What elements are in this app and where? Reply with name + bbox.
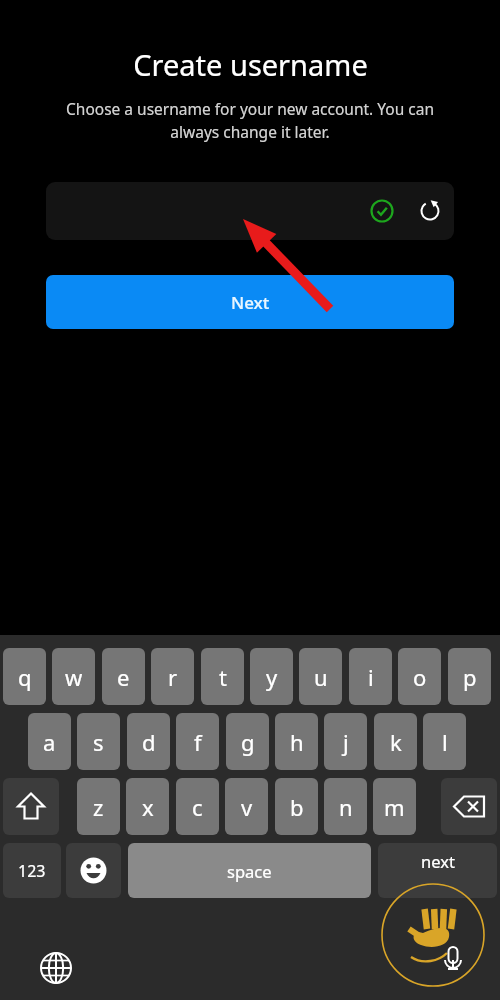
button[interactable]: p — [448, 648, 491, 705]
staticText: j — [343, 727, 349, 757]
staticText: d — [142, 727, 156, 757]
button[interactable]: Username available — [46, 182, 454, 240]
staticText: l — [442, 727, 448, 757]
button[interactable]: q — [3, 648, 46, 705]
staticText: c — [192, 792, 203, 822]
staticText: f — [194, 727, 202, 757]
staticText: space — [227, 860, 272, 882]
staticText: next — [421, 850, 455, 872]
staticText: r — [168, 662, 178, 692]
button[interactable]: r — [151, 648, 194, 705]
button[interactable]: f — [176, 713, 219, 770]
button[interactable]: Next — [46, 275, 454, 329]
button[interactable]: d — [127, 713, 170, 770]
staticText: 123 — [18, 860, 46, 882]
button[interactable]: g — [226, 713, 269, 770]
button[interactable]: b — [275, 778, 318, 835]
staticText: Create username — [133, 45, 368, 84]
button[interactable]: k — [374, 713, 417, 770]
button[interactable]: c — [176, 778, 219, 835]
staticText: Choose a username for your new account. … — [42, 98, 458, 143]
staticText: z — [93, 792, 104, 822]
button[interactable]: Refresh suggestion — [418, 199, 442, 223]
staticText: p — [463, 662, 477, 692]
button[interactable]: u — [299, 648, 342, 705]
button[interactable]: y — [250, 648, 293, 705]
staticText: a — [43, 727, 56, 757]
button[interactable]: n — [324, 778, 367, 835]
staticText: Next — [231, 291, 270, 314]
staticText: g — [241, 727, 255, 757]
button[interactable]: i — [349, 648, 392, 705]
button[interactable]: o — [398, 648, 441, 705]
staticText: q — [18, 662, 32, 692]
staticText: s — [93, 727, 104, 757]
staticText: u — [314, 662, 328, 692]
button[interactable]: Backspace — [441, 778, 497, 835]
button[interactable]: z — [77, 778, 120, 835]
staticText: x — [142, 792, 154, 822]
button[interactable]: x — [126, 778, 169, 835]
staticText: i — [368, 662, 374, 692]
staticText: t — [219, 662, 227, 692]
staticText: k — [390, 727, 402, 757]
button[interactable]: t — [201, 648, 244, 705]
button[interactable]: Username available — [370, 199, 394, 223]
staticText: y — [266, 662, 278, 692]
button[interactable]: m — [373, 778, 416, 835]
button[interactable]: Change keyboard language — [36, 948, 76, 988]
button[interactable]: v — [225, 778, 268, 835]
button[interactable]: e — [102, 648, 145, 705]
staticText: e — [117, 662, 130, 692]
button[interactable]: w — [52, 648, 95, 705]
button[interactable]: Emoji — [66, 843, 121, 898]
button[interactable]: j — [324, 713, 367, 770]
staticText: v — [241, 792, 253, 822]
button[interactable]: s — [77, 713, 120, 770]
staticText: o — [413, 662, 427, 692]
button[interactable]: Shift — [3, 778, 59, 835]
button[interactable]: next — [378, 843, 497, 898]
button[interactable]: space — [128, 843, 371, 898]
button[interactable]: 123 — [3, 843, 61, 898]
button[interactable]: h — [275, 713, 318, 770]
staticText: w — [65, 662, 83, 692]
staticText: h — [290, 727, 304, 757]
button[interactable]: l — [423, 713, 466, 770]
staticText: n — [339, 792, 353, 822]
button[interactable]: a — [28, 713, 71, 770]
staticText: m — [384, 792, 405, 822]
staticText: b — [290, 792, 304, 822]
